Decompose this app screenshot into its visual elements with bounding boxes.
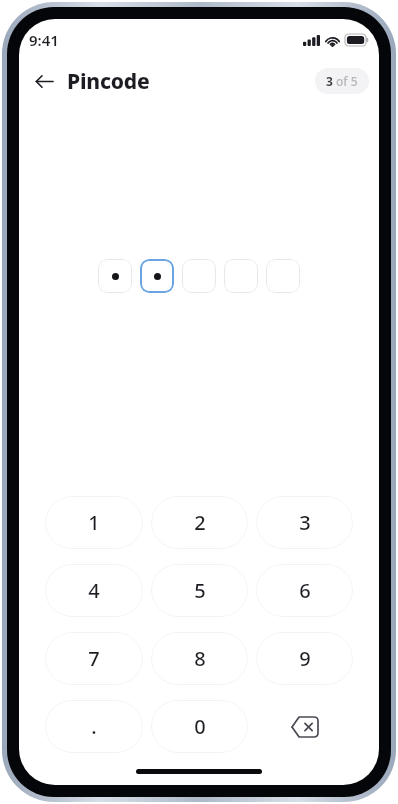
button[interactable]: 5 — [151, 564, 248, 617]
staticText: 6 — [299, 577, 311, 604]
staticText: 3 — [299, 509, 311, 536]
button[interactable]: . — [45, 700, 143, 753]
button[interactable]: 0 — [151, 700, 248, 753]
button[interactable]: 2 — [151, 496, 248, 549]
button[interactable]: Pin digit 1 — [98, 259, 132, 293]
button[interactable]: Pin digit 4 — [224, 259, 258, 293]
staticText: 0 — [194, 713, 206, 740]
button[interactable]: Pin digit 5 — [266, 259, 300, 293]
button[interactable]: 9 — [256, 632, 353, 685]
button[interactable]: 6 — [256, 564, 353, 617]
button[interactable]: 3 — [315, 68, 369, 94]
staticText: 5 — [194, 577, 206, 604]
staticText: 9:41 — [29, 30, 59, 50]
staticText: 3 — [326, 73, 333, 89]
button[interactable]: Pin digit 3 — [182, 259, 216, 293]
button[interactable]: 8 — [151, 632, 248, 685]
staticText: 8 — [194, 645, 206, 672]
button[interactable]: 3 — [256, 496, 353, 549]
staticText: 1 — [88, 509, 100, 536]
button[interactable]: Backspace — [256, 700, 353, 753]
button[interactable]: 4 — [45, 564, 143, 617]
staticText: 4 — [88, 577, 100, 604]
staticText: Pincode — [67, 67, 150, 96]
button[interactable]: Pin digit 2 — [140, 259, 174, 293]
staticText: . — [91, 713, 97, 740]
button[interactable]: 1 — [45, 496, 143, 549]
staticText: 7 — [88, 645, 100, 672]
staticText: 9 — [299, 645, 311, 672]
button[interactable]: 7 — [45, 632, 143, 685]
staticText: of 5 — [336, 73, 358, 89]
button[interactable]: Back — [29, 66, 59, 96]
staticText: 2 — [194, 509, 206, 536]
